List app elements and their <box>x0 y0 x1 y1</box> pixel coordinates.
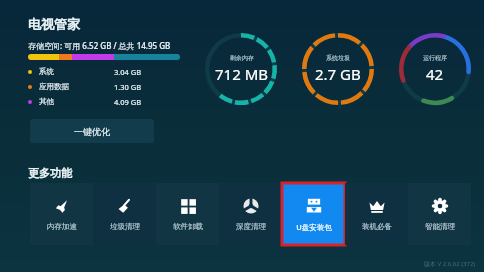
staticText: U盘安装包 <box>296 222 332 232</box>
button[interactable]: 软件卸载 <box>156 183 219 245</box>
staticText: 软件卸载 <box>173 222 203 231</box>
staticText: 4.09 GB <box>114 97 142 107</box>
staticText: 其他 <box>39 97 54 106</box>
staticText: 装机必备 <box>362 222 392 231</box>
staticText: 系统垃圾 <box>326 54 350 62</box>
staticText: 一键优化 <box>74 126 110 137</box>
button[interactable]: 运行程序 <box>399 33 471 105</box>
button[interactable]: 其他 <box>28 94 180 109</box>
button[interactable]: U盘安装包 <box>282 183 345 245</box>
staticText: 1.30 GB <box>114 82 142 92</box>
staticText: 系统 <box>39 67 54 76</box>
staticText: 内存加速 <box>47 222 77 231</box>
staticText: 存储空间: 可用 6.52 GB / 总共 14.95 GB <box>28 40 171 51</box>
button[interactable]: 深度清理 <box>219 183 282 245</box>
staticText: 3.04 GB <box>114 67 142 77</box>
staticText: 电视管家 <box>28 16 80 32</box>
button[interactable]: 剩余内存 <box>205 33 277 105</box>
staticText: 深度清理 <box>236 222 266 231</box>
staticText: 应用数据 <box>39 82 69 91</box>
staticText: 712 MB <box>215 64 268 84</box>
staticText: 42 <box>426 64 444 84</box>
staticText: 2.7 GB <box>315 64 361 84</box>
staticText: 剩余内存 <box>230 54 254 62</box>
button[interactable]: 系统 <box>28 64 180 79</box>
staticText: 运行程序 <box>423 54 447 62</box>
button[interactable]: 应用数据 <box>28 79 180 94</box>
button[interactable]: 垃圾清理 <box>93 183 156 245</box>
staticText: 更多功能 <box>28 166 72 180</box>
staticText: 智能清理 <box>425 222 455 231</box>
button[interactable]: 智能清理 <box>408 183 471 245</box>
staticText: 垃圾清理 <box>110 222 140 231</box>
staticText: 版本 V 2.6.82 (372) <box>424 260 476 268</box>
button[interactable]: 装机必备 <box>345 183 408 245</box>
button[interactable]: 一键优化 <box>30 119 154 143</box>
button[interactable]: 内存加速 <box>30 183 93 245</box>
button[interactable]: 系统垃圾 <box>302 33 374 105</box>
